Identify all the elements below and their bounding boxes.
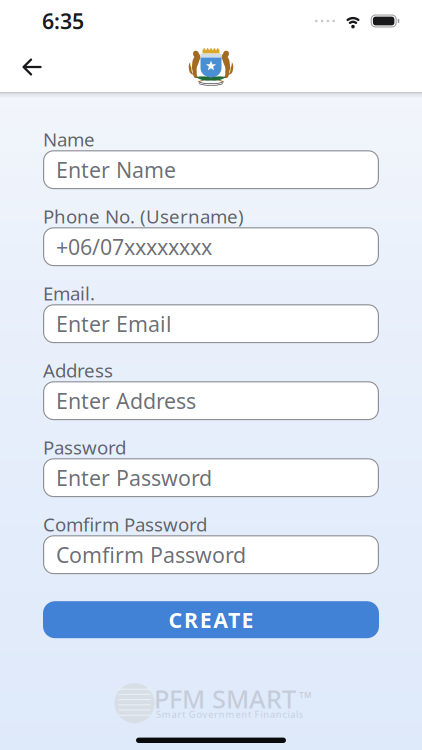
staticText: Enter Password	[56, 463, 212, 492]
button[interactable]: Enter Address	[43, 381, 379, 420]
button[interactable]: Back	[0, 50, 44, 84]
button[interactable]: CREATE	[43, 601, 379, 638]
staticText: Enter Address	[56, 386, 196, 415]
staticText: PFM SMART	[154, 682, 296, 715]
staticText: 6:35	[42, 7, 84, 35]
staticText: Email.	[43, 281, 95, 306]
staticText: Address	[43, 358, 113, 383]
button[interactable]: Comfirm Password	[43, 535, 379, 574]
staticText: Password	[43, 435, 126, 460]
staticText: Enter Email	[56, 309, 172, 338]
button[interactable]: +06/07xxxxxxxx	[43, 227, 379, 266]
staticText: Smart Government Financials	[156, 708, 303, 720]
staticText: TM	[299, 690, 311, 700]
staticText: Phone No. (Username)	[43, 204, 244, 229]
button[interactable]: Enter Password	[43, 458, 379, 497]
staticText: Comfirm Password	[43, 512, 207, 537]
staticText: Comfirm Password	[56, 540, 246, 569]
button[interactable]: Enter Email	[43, 304, 379, 343]
button[interactable]: Enter Name	[43, 150, 379, 189]
staticText: Enter Name	[56, 155, 176, 184]
staticText: CREATE	[168, 605, 253, 634]
staticText: +06/07xxxxxxxx	[56, 232, 212, 261]
staticText: Name	[43, 127, 95, 152]
